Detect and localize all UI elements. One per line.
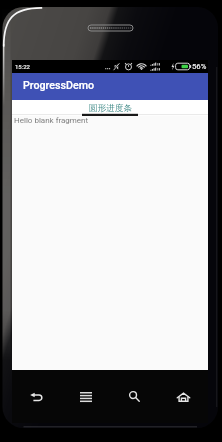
staticText: ProgressDemo [23, 79, 95, 92]
button[interactable]: ProgressDemo [12, 73, 208, 100]
button[interactable]: Home [159, 370, 208, 423]
staticText: 圆形进度条 [89, 103, 132, 114]
button[interactable]: Recent apps [61, 370, 110, 423]
staticText: Hello blank fragment [14, 116, 89, 125]
button[interactable]: 圆形进度条 [82, 100, 138, 116]
staticText: 15:22 [15, 63, 30, 70]
staticText: 56% [192, 62, 207, 71]
button[interactable]: Search [110, 370, 159, 423]
button[interactable]: Back [12, 370, 61, 423]
